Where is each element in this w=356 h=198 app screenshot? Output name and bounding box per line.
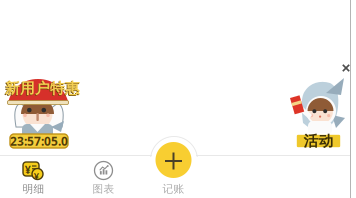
button[interactable]: 关闭	[339, 61, 353, 75]
staticText: 记账	[162, 182, 184, 195]
button[interactable]: ¥	[0, 157, 68, 193]
button[interactable]: 活动	[296, 134, 341, 148]
staticText: ¥	[25, 162, 31, 177]
button[interactable]: 图表	[68, 157, 138, 193]
staticText: 新用户特惠	[4, 80, 79, 98]
button[interactable]: 记账	[138, 157, 208, 193]
staticText: 新用户特惠	[5, 79, 80, 97]
staticText: 23:57:05.0	[10, 133, 68, 149]
button[interactable]: 新用户特惠	[3, 78, 83, 150]
staticText: ¥	[34, 169, 39, 182]
staticText: 明细	[22, 182, 44, 195]
staticText: 活动	[303, 132, 333, 150]
staticText: 图表	[92, 182, 114, 195]
